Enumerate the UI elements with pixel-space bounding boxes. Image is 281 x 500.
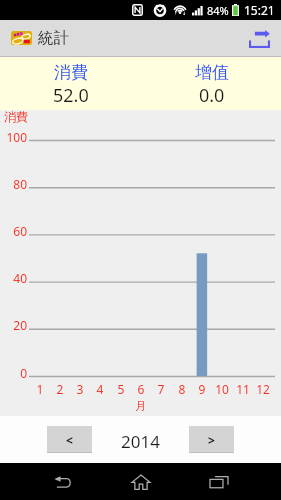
staticText: 2 bbox=[50, 381, 70, 397]
staticText: 52.0 bbox=[53, 83, 89, 108]
staticText: 0 bbox=[0, 365, 27, 381]
staticText: 6 bbox=[131, 381, 151, 397]
button[interactable]: Home bbox=[110, 463, 172, 500]
staticText: 9 bbox=[192, 381, 212, 397]
staticText: 4 bbox=[90, 381, 110, 397]
button[interactable]: Export bbox=[239, 20, 281, 56]
staticText: 5 bbox=[111, 381, 131, 397]
staticText: 84% bbox=[207, 3, 229, 18]
staticText: 增值 bbox=[195, 62, 229, 83]
staticText: 3 bbox=[70, 381, 90, 397]
staticText: 20 bbox=[0, 317, 27, 333]
staticText: 統計 bbox=[38, 28, 69, 48]
staticText: > bbox=[208, 432, 215, 448]
staticText: 100 bbox=[0, 129, 27, 145]
staticText: 月 bbox=[135, 399, 146, 413]
staticText: 40 bbox=[0, 270, 27, 286]
staticText: < bbox=[66, 432, 73, 448]
staticText: 7 bbox=[151, 381, 171, 397]
staticText: 1 bbox=[30, 381, 50, 397]
staticText: 12 bbox=[253, 381, 273, 397]
staticText: 0.0 bbox=[199, 83, 225, 108]
button[interactable]: > bbox=[189, 426, 234, 453]
staticText: 8 bbox=[172, 381, 192, 397]
staticText: 15:21 bbox=[244, 2, 275, 18]
staticText: 80 bbox=[0, 176, 27, 192]
staticText: 60 bbox=[0, 223, 27, 239]
staticText: 11 bbox=[233, 381, 253, 397]
staticText: 消費 bbox=[4, 109, 28, 124]
staticText: 2014 bbox=[0, 430, 281, 453]
button[interactable]: < bbox=[47, 426, 92, 453]
button[interactable]: Back bbox=[32, 463, 94, 500]
staticText: 消費 bbox=[54, 62, 88, 83]
staticText: 10 bbox=[212, 381, 232, 397]
button[interactable]: Recents bbox=[188, 463, 250, 500]
